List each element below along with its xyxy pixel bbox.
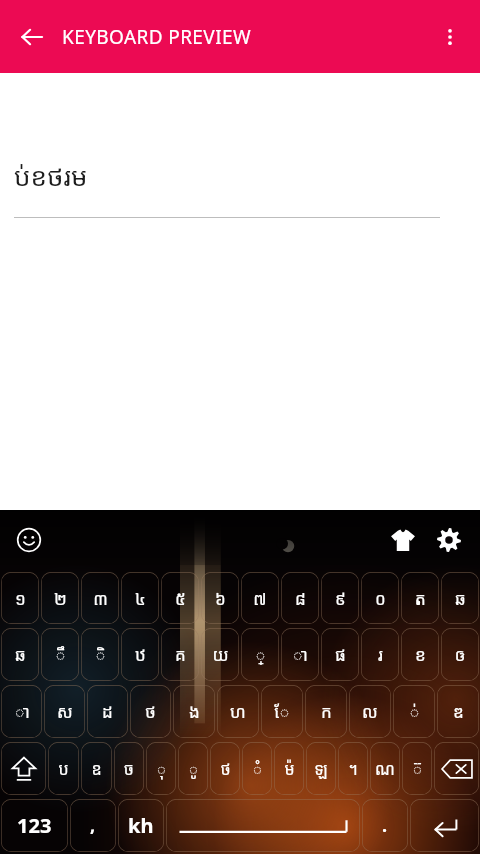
button[interactable]: ៩ (321, 572, 359, 624)
button[interactable]: ុ (146, 742, 176, 795)
button[interactable]: ០ (361, 572, 399, 624)
button[interactable]: ឹ (41, 628, 79, 681)
button[interactable]: Space (166, 799, 360, 852)
staticText: 123 (17, 812, 52, 839)
button[interactable]: ៣ (81, 572, 119, 624)
button[interactable]: ា (1, 685, 42, 738)
button[interactable]: Back (8, 13, 56, 61)
staticText: ថ (145, 700, 156, 723)
button[interactable]: ១ (1, 572, 39, 624)
staticText: ។ (348, 758, 358, 780)
button[interactable]: ្ (241, 628, 279, 681)
button[interactable]: ហ (217, 685, 259, 738)
staticText: ង (189, 700, 200, 723)
staticText: ដ (102, 700, 113, 723)
staticText: ៧ (253, 587, 267, 610)
staticText: kh (128, 812, 154, 839)
button[interactable]: ថ (130, 685, 171, 738)
button[interactable]: ំ (242, 742, 272, 795)
staticText: ខ (415, 643, 426, 666)
button[interactable]: ផ (321, 628, 359, 681)
button[interactable]: ល (349, 685, 391, 738)
button[interactable]: ឋ (121, 628, 159, 681)
staticText: ៨ (295, 587, 306, 610)
button[interactable]: 123 (1, 799, 68, 852)
staticText: ៩ (335, 587, 346, 610)
button[interactable]: រ (361, 628, 399, 681)
button[interactable]: Settings (426, 517, 472, 563)
staticText: ប (58, 758, 69, 780)
staticText: . (382, 813, 388, 838)
button[interactable]: ៨ (281, 572, 319, 624)
staticText: ៤ (135, 587, 146, 610)
button[interactable]: ម៉ (274, 742, 304, 795)
button[interactable]: ឌ (437, 685, 479, 738)
button[interactable]: Emoji (6, 517, 52, 563)
staticText: ា (14, 700, 30, 723)
button[interactable]: ដ (87, 685, 128, 738)
button[interactable]: ក (305, 685, 347, 738)
button[interactable]: ិ (81, 628, 119, 681)
button[interactable]: ២ (41, 572, 79, 624)
staticText: ផ (335, 643, 346, 666)
button[interactable]: Theme (380, 517, 426, 563)
button[interactable]: ។ (338, 742, 368, 795)
button[interactable]: ប (48, 742, 79, 795)
staticText: ិ (95, 643, 106, 666)
staticText: ០ (375, 587, 386, 610)
staticText: ូ (188, 758, 199, 780)
staticText: ា (292, 643, 308, 666)
button[interactable]: ៦ (201, 572, 239, 624)
button[interactable]: ច (114, 742, 144, 795)
button[interactable]: ៊ (402, 742, 432, 795)
button[interactable]: ថ (210, 742, 240, 795)
button[interactable]: ឆ (441, 572, 479, 624)
staticText: ហ (230, 700, 246, 723)
button[interactable]: Backspace (434, 742, 479, 795)
button[interactable]: ៥ (161, 572, 199, 624)
button[interactable]: ត (401, 572, 439, 624)
staticText: ប់ខថរម (14, 158, 88, 193)
staticText: ២ (54, 587, 67, 610)
button[interactable]: ស (44, 685, 85, 738)
button[interactable]: ា (281, 628, 319, 681)
staticText: ៊ (412, 758, 423, 780)
button[interactable]: Enter (410, 799, 479, 852)
button[interactable]: ឡ (306, 742, 336, 795)
staticText: ឋ (135, 643, 146, 666)
staticText: ត (415, 587, 426, 610)
staticText: ឲ (455, 643, 465, 666)
staticText: យ (212, 643, 229, 666)
button[interactable]: ឆ (1, 628, 39, 681)
staticText: ៣ (93, 587, 108, 610)
button[interactable]: kh (118, 799, 164, 852)
button[interactable]: ឧ (81, 742, 112, 795)
staticText: ៥ (175, 587, 186, 610)
staticText: ថ (220, 758, 231, 780)
button[interactable]: ់ (393, 685, 435, 738)
staticText: ្ (255, 643, 266, 666)
staticText: ៦ (215, 587, 226, 610)
staticText: KEYBOARD PREVIEW (62, 24, 252, 50)
button[interactable]: More options (426, 13, 474, 61)
button[interactable]: ឲ (441, 628, 479, 681)
button[interactable]: ៤ (121, 572, 159, 624)
button[interactable]: ូ (178, 742, 208, 795)
button[interactable]: , (70, 799, 116, 852)
staticText: ឡ (314, 758, 328, 780)
staticText: ស (57, 700, 73, 723)
button[interactable]: ណ (370, 742, 400, 795)
button[interactable]: គ (161, 628, 199, 681)
button[interactable]: . (362, 799, 408, 852)
button[interactable]: យ (201, 628, 239, 681)
staticText: ់ (409, 700, 420, 723)
staticText: ១ (15, 587, 26, 610)
staticText: ឧ (91, 758, 102, 780)
staticText: ឆ (455, 587, 466, 610)
button[interactable]: ង (173, 685, 215, 738)
button[interactable]: ែ (261, 685, 303, 738)
button[interactable]: ៧ (241, 572, 279, 624)
button[interactable]: Shift (1, 742, 46, 795)
button[interactable]: ខ (401, 628, 439, 681)
staticText: ឌ (453, 700, 464, 723)
